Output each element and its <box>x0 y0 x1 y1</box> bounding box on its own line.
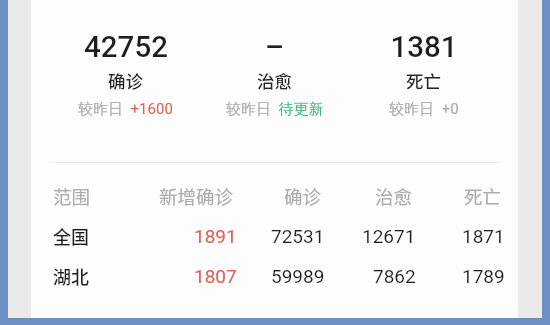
staticText: 42752 <box>84 30 168 65</box>
staticText: 1807 <box>194 265 237 287</box>
staticText: 12671 <box>362 225 416 247</box>
staticText: 新增确诊 <box>159 183 234 210</box>
staticText: 湖北 <box>53 263 89 289</box>
staticText: 1891 <box>194 225 237 247</box>
staticText: 较昨日 待更新 <box>226 100 324 119</box>
staticText: 59989 <box>271 265 325 287</box>
button[interactable]: 湖北 <box>31 256 518 296</box>
staticText: 死亡 <box>406 68 441 93</box>
staticText: 治愈 <box>375 183 413 210</box>
button[interactable]: 全国 <box>31 216 518 256</box>
staticText: 1871 <box>462 225 505 247</box>
staticText: 治愈 <box>257 68 292 93</box>
staticText: 较昨日 +1600 <box>78 100 173 119</box>
button[interactable]: 42752 <box>51 30 200 119</box>
staticText: 确诊 <box>284 183 322 210</box>
staticText: 1381 <box>390 30 458 65</box>
staticText: 7862 <box>373 265 416 287</box>
button[interactable]: – <box>200 30 349 119</box>
staticText: 范围 <box>53 183 91 210</box>
staticText: 1789 <box>462 265 505 287</box>
staticText: 死亡 <box>464 183 502 210</box>
button[interactable]: 1381 <box>349 30 498 119</box>
staticText: 较昨日 +0 <box>389 100 459 119</box>
staticText: 确诊 <box>108 68 143 93</box>
staticText: 全国 <box>53 223 89 249</box>
button[interactable]: 范围 <box>31 176 518 216</box>
staticText: – <box>265 30 284 65</box>
staticText: 72531 <box>271 225 325 247</box>
